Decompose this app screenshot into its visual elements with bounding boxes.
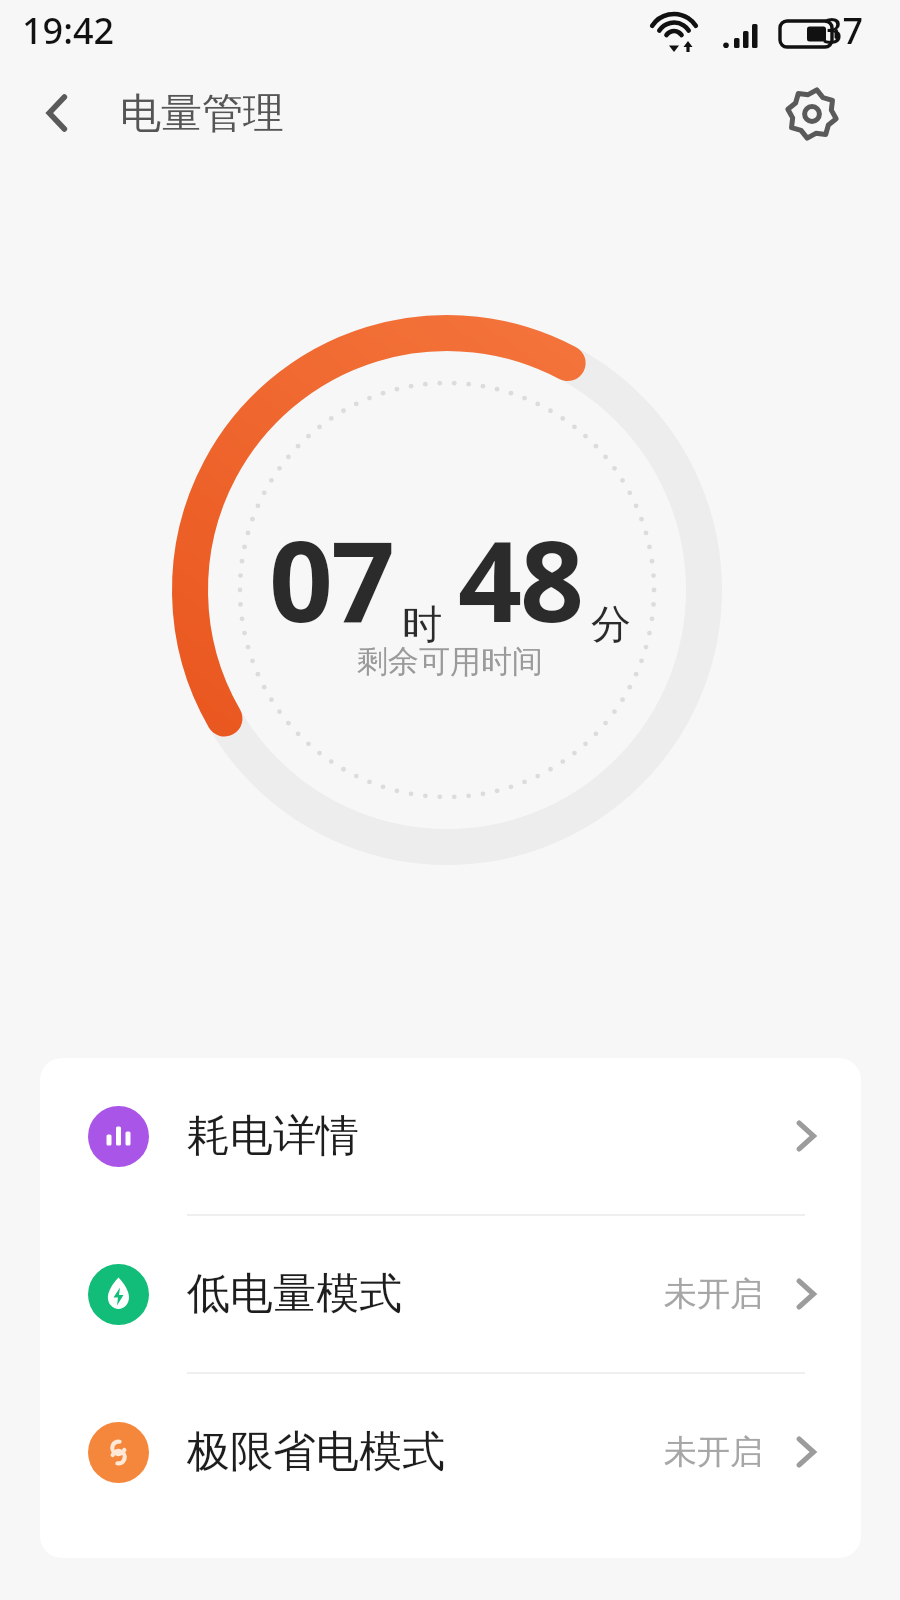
button[interactable]: 耗电详情: [40, 1058, 861, 1214]
staticText: 07: [269, 502, 394, 655]
button[interactable]: Settings: [766, 68, 858, 160]
staticText: 耗电详情: [187, 1109, 359, 1163]
staticText: 未开启: [664, 1431, 763, 1473]
staticText: 极限省电模式: [187, 1425, 445, 1479]
button[interactable]: 极限省电模式: [40, 1374, 861, 1530]
staticText: 37: [822, 6, 864, 55]
button[interactable]: 低电量模式: [40, 1216, 861, 1372]
staticText: 未开启: [664, 1273, 763, 1315]
staticText: 时: [402, 599, 442, 649]
staticText: 19:42: [22, 6, 115, 55]
staticText: 低电量模式: [187, 1267, 402, 1321]
staticText: 电量管理: [120, 88, 284, 140]
staticText: 剩余可用时间: [357, 642, 543, 681]
button[interactable]: Back: [16, 68, 100, 158]
staticText: 48: [458, 502, 583, 655]
staticText: 分: [591, 599, 631, 649]
